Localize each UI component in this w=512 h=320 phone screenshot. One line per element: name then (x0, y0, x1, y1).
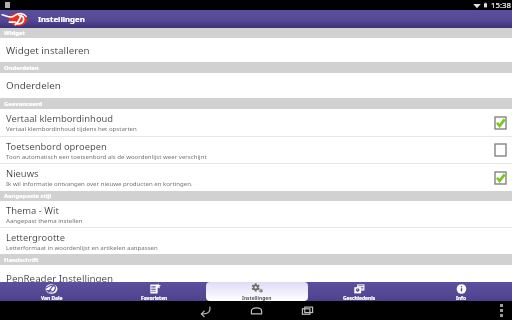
staticText: Letterformaat in woordenlijst en artikel… (6, 243, 158, 251)
staticText: Widget installeren (6, 44, 90, 57)
staticText: Onderdelen (6, 79, 61, 92)
button[interactable]: Toetsenbord oproepen (0, 137, 512, 163)
staticText: Lettergrootte (6, 231, 65, 244)
staticText: Toetsenbord oproepen (6, 140, 107, 153)
button[interactable]: Favorieten (103, 282, 206, 301)
button[interactable]: Home (248, 302, 265, 319)
staticText: Nieuws (6, 167, 39, 180)
button[interactable]: Lettergrootte (0, 228, 512, 254)
button[interactable]: Van Dale (0, 282, 103, 301)
button[interactable]: Back (197, 302, 214, 319)
staticText: Handschrift (4, 256, 39, 264)
staticText: Instellingen (38, 14, 85, 25)
staticText: Geschiedenis (343, 295, 376, 302)
staticText: Van Dale (41, 295, 63, 302)
button[interactable]: Instellingen (206, 282, 308, 301)
button[interactable]: Onderdelen (0, 73, 512, 98)
staticText: Widget (4, 29, 25, 37)
button[interactable]: More options (500, 304, 503, 317)
button[interactable]: Geschiedenis (308, 282, 410, 301)
staticText: Aangepaste stijl (4, 192, 52, 200)
staticText: 15:38 (491, 0, 511, 10)
button[interactable]: Recent apps (299, 302, 316, 319)
staticText: Aangepast thema instellen (6, 216, 83, 224)
staticText: Thema - Wit (6, 204, 59, 217)
button[interactable]: Nieuws (0, 164, 512, 191)
staticText: Ik wil informatie ontvangen over nieuwe … (6, 179, 193, 187)
button[interactable]: Widget installeren (0, 38, 512, 62)
button[interactable]: Vertaal klembordinhoud (0, 109, 512, 136)
staticText: Geavanceerd (4, 100, 43, 108)
staticText: Favorieten (141, 295, 168, 302)
staticText: Instellingen (242, 295, 272, 301)
button[interactable]: Info (410, 282, 512, 301)
button[interactable]: Thema - Wit (0, 201, 512, 227)
staticText: Info (456, 295, 467, 302)
staticText: Toon automatisch een toetsenbord als de … (6, 152, 207, 160)
button[interactable]: PenReader Instellingen (0, 265, 512, 282)
staticText: Onderdelen (4, 64, 39, 72)
staticText: Vertaal klembordinhoud tijdens het opsta… (6, 124, 137, 132)
staticText: PenReader Instellingen (6, 272, 114, 282)
staticText: Vertaal klembordinhoud (6, 112, 114, 125)
